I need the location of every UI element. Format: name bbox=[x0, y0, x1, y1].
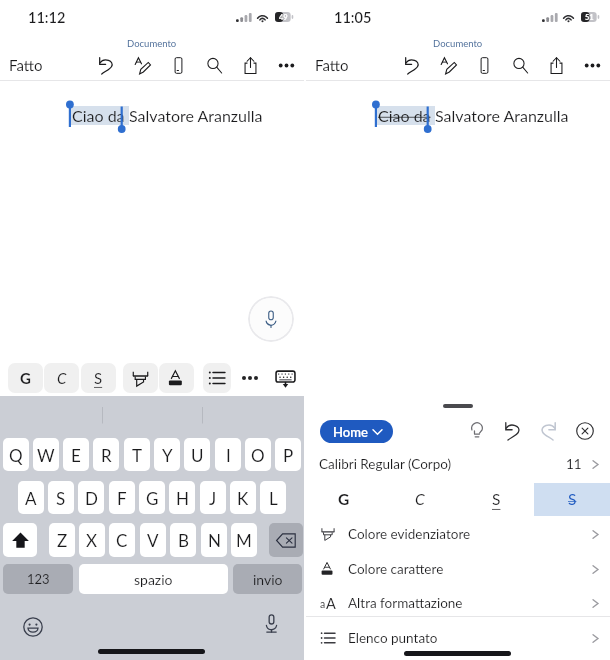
button[interactable]: C bbox=[382, 483, 458, 516]
button[interactable]: F bbox=[109, 481, 135, 514]
staticText: 49 bbox=[279, 13, 288, 22]
staticText: S bbox=[492, 490, 501, 509]
button[interactable]: N bbox=[201, 523, 227, 557]
button[interactable]: Fatto bbox=[4, 52, 48, 78]
button[interactable]: Redo bbox=[536, 419, 560, 443]
button[interactable]: S bbox=[81, 363, 116, 393]
button[interactable]: L bbox=[260, 481, 286, 514]
button[interactable]: T bbox=[124, 438, 150, 471]
button[interactable]: Undo bbox=[501, 419, 525, 443]
button[interactable]: Undo bbox=[399, 52, 425, 78]
staticText: C bbox=[116, 530, 128, 550]
button[interactable]: G bbox=[139, 481, 165, 514]
button[interactable]: X bbox=[79, 523, 105, 557]
button[interactable]: Backspace bbox=[269, 523, 303, 557]
button[interactable]: R bbox=[93, 438, 119, 471]
button[interactable]: Colore evidenziatore bbox=[306, 517, 610, 551]
button[interactable]: C bbox=[44, 363, 79, 393]
button[interactable]: Mobile view bbox=[165, 52, 191, 78]
button[interactable]: W bbox=[33, 438, 59, 471]
button[interactable]: Elenco puntato bbox=[306, 621, 610, 655]
staticText: 11:05 bbox=[334, 9, 372, 26]
button[interactable]: D bbox=[78, 481, 104, 514]
button[interactable]: U bbox=[184, 438, 210, 471]
button[interactable]: More formatting bbox=[236, 364, 264, 392]
button[interactable]: G bbox=[8, 363, 43, 393]
staticText: Ciao da bbox=[378, 106, 431, 125]
staticText: D bbox=[85, 488, 98, 508]
button[interactable]: V bbox=[140, 523, 166, 557]
staticText: H bbox=[176, 488, 189, 508]
button[interactable]: J bbox=[200, 481, 226, 514]
button[interactable]: Dictate bbox=[262, 614, 281, 633]
staticText: I bbox=[226, 445, 231, 465]
button[interactable]: Hide keyboard bbox=[271, 364, 299, 392]
button[interactable]: A bbox=[18, 481, 44, 514]
button[interactable]: spazio bbox=[79, 564, 228, 594]
button[interactable]: B bbox=[170, 523, 196, 557]
staticText: S bbox=[94, 369, 103, 387]
button[interactable]: G bbox=[306, 483, 382, 516]
staticText: C bbox=[57, 369, 67, 387]
button[interactable]: K bbox=[230, 481, 256, 514]
staticText: M bbox=[236, 530, 252, 550]
staticText: C bbox=[415, 490, 425, 509]
staticText: 123 bbox=[27, 571, 50, 587]
staticText: a bbox=[320, 598, 326, 611]
button[interactable]: I bbox=[215, 438, 241, 471]
button[interactable]: Y bbox=[154, 438, 180, 471]
button[interactable]: Shift bbox=[3, 523, 37, 557]
button[interactable]: Draw bbox=[129, 52, 155, 78]
button[interactable]: 123 bbox=[3, 564, 73, 594]
staticText: Colore evidenziatore bbox=[348, 526, 471, 542]
button[interactable]: Colore carattere bbox=[306, 552, 610, 586]
staticText: Calibri Regular (Corpo) bbox=[319, 456, 452, 472]
staticText: Documento bbox=[127, 38, 177, 49]
button[interactable] bbox=[203, 363, 231, 393]
staticText: Documento bbox=[433, 38, 483, 49]
button[interactable]: S bbox=[458, 483, 534, 516]
staticText: A bbox=[326, 595, 336, 611]
button[interactable]: Q bbox=[3, 438, 29, 471]
staticText: invio bbox=[253, 571, 283, 588]
button[interactable]: Close bbox=[573, 419, 597, 443]
staticText: W bbox=[37, 445, 55, 465]
button[interactable]: Calibri Regular (Corpo) bbox=[306, 452, 610, 476]
button[interactable]: Share bbox=[237, 52, 263, 78]
button[interactable]: C bbox=[109, 523, 135, 557]
button[interactable]: Ideas bbox=[465, 419, 489, 443]
button[interactable]: More options bbox=[579, 52, 605, 78]
button[interactable]: S bbox=[48, 481, 74, 514]
button[interactable]: P bbox=[275, 438, 301, 471]
button[interactable]: Share bbox=[543, 52, 569, 78]
button[interactable]: More options bbox=[273, 52, 299, 78]
button[interactable] bbox=[123, 363, 158, 393]
button[interactable]: E bbox=[63, 438, 89, 471]
staticText: 51 bbox=[585, 13, 594, 22]
button[interactable]: Mobile view bbox=[471, 52, 497, 78]
button[interactable]: M bbox=[231, 523, 257, 557]
button[interactable]: Search bbox=[507, 52, 533, 78]
button[interactable]: S bbox=[534, 483, 610, 516]
staticText: Q bbox=[9, 445, 23, 465]
button[interactable]: invio bbox=[233, 564, 302, 594]
button[interactable]: Dictate bbox=[248, 296, 294, 342]
button[interactable]: Home bbox=[320, 420, 393, 443]
button[interactable]: Z bbox=[49, 523, 75, 557]
button[interactable] bbox=[159, 363, 194, 393]
staticText: U bbox=[191, 445, 204, 465]
button[interactable]: a bbox=[306, 586, 610, 620]
button[interactable]: O bbox=[245, 438, 271, 471]
button[interactable]: Draw bbox=[435, 52, 461, 78]
staticText: G bbox=[338, 490, 350, 509]
button[interactable]: Search bbox=[201, 52, 227, 78]
staticText: E bbox=[71, 445, 81, 465]
button[interactable]: Undo bbox=[93, 52, 119, 78]
button[interactable]: H bbox=[169, 481, 195, 514]
button[interactable]: Emoji bbox=[23, 617, 43, 637]
staticText: 11:12 bbox=[28, 9, 66, 26]
button[interactable]: Fatto bbox=[310, 52, 354, 78]
staticText: Elenco puntato bbox=[348, 630, 438, 646]
staticText: A bbox=[25, 488, 37, 508]
staticText: Fatto bbox=[9, 56, 43, 74]
